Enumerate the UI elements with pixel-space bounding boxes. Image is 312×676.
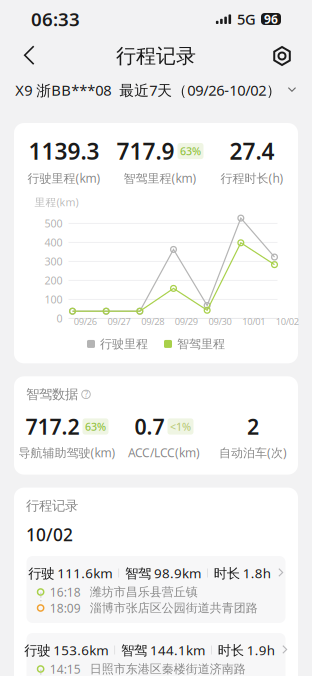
staticText: 5G	[237, 9, 256, 29]
staticText: 18:09	[50, 600, 81, 616]
staticText: <1%	[170, 419, 191, 434]
staticText: 10/01	[242, 315, 265, 328]
staticText: 里程(km)	[34, 195, 78, 209]
staticText: 400	[44, 235, 62, 249]
button[interactable]: 设置	[265, 39, 299, 73]
staticText: 智驾 98.9km	[125, 564, 201, 582]
staticText: ACC/LCC(km)	[128, 445, 200, 461]
staticText: 27.4	[229, 136, 274, 166]
staticText: ?	[84, 389, 87, 400]
staticText: 智驾 144.1km	[121, 641, 205, 659]
staticText: 行驶里程	[100, 337, 148, 351]
staticText: X9 浙BB***08	[15, 80, 111, 100]
staticText: 09/28	[141, 315, 164, 328]
staticText: 行驶 111.6km	[28, 564, 112, 582]
button[interactable]: 行驶 111.6km	[26, 556, 285, 623]
staticText: 06:33	[31, 7, 80, 31]
staticText: 行程时长(h)	[220, 170, 283, 186]
staticText: 09/26	[74, 315, 97, 328]
staticText: 96	[264, 11, 278, 27]
staticText: 0	[56, 311, 62, 325]
staticText: 63%	[85, 419, 106, 434]
staticText: 2	[247, 412, 259, 441]
staticText: 行驶里程(km)	[27, 170, 100, 186]
staticText: 09/27	[107, 315, 130, 328]
staticText: 淄博市张店区公园街道共青团路	[90, 601, 258, 615]
staticText: 300	[44, 254, 62, 268]
staticText: 智驾里程	[177, 337, 225, 351]
staticText: 潍坊市昌乐县营丘镇	[90, 585, 198, 599]
staticText: 0.7	[134, 412, 164, 441]
staticText: 10/02	[26, 523, 73, 546]
staticText: 717.9	[116, 136, 174, 166]
button[interactable]: 行驶 153.6km	[26, 633, 285, 676]
button[interactable]: 返回	[13, 39, 47, 73]
staticText: 100	[44, 292, 62, 306]
staticText: 时长 1.8h	[214, 564, 271, 582]
staticText: 行程记录	[116, 44, 196, 68]
staticText: 行程记录	[26, 498, 78, 514]
staticText: 时长 1.9h	[218, 641, 275, 659]
staticText: 717.2	[25, 412, 79, 441]
staticText: 500	[44, 216, 62, 230]
staticText: 200	[44, 273, 62, 287]
button[interactable]: X9 浙BB***08	[15, 75, 111, 105]
staticText: 自动泊车(次)	[219, 445, 287, 461]
staticText: 14:15	[50, 661, 81, 676]
staticText: 63%	[180, 144, 201, 158]
staticText: 智驾里程(km)	[123, 170, 196, 186]
staticText: 最近7天（09/26-10/02）	[119, 80, 281, 100]
staticText: 导航辅助驾驶(km)	[18, 445, 115, 461]
staticText: 16:18	[50, 584, 81, 600]
staticText: 1139.3	[28, 136, 99, 166]
staticText: 行驶 153.6km	[24, 641, 108, 659]
staticText: 09/29	[175, 315, 198, 328]
staticText: 智驾数据	[26, 386, 78, 402]
staticText: 09/30	[208, 315, 231, 328]
button[interactable]: 最近7天（09/26-10/02）	[119, 75, 297, 105]
staticText: 日照市东港区秦楼街道济南路	[90, 662, 246, 676]
staticText: 10/02	[276, 315, 299, 328]
